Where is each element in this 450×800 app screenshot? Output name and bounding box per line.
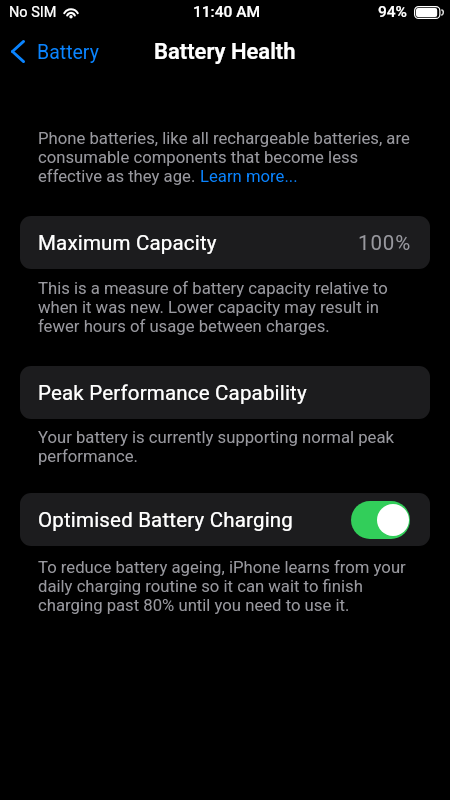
staticText: Battery [37, 41, 99, 64]
staticText: This is a measure of battery capacity re… [38, 279, 412, 336]
button[interactable]: Optimised Battery Charging switch [351, 501, 410, 539]
button[interactable]: Learn more... [200, 167, 298, 187]
button[interactable]: Optimised Battery Charging [20, 493, 430, 546]
staticText: 11:40 AM [193, 3, 261, 21]
staticText: Peak Performance Capability [38, 381, 307, 405]
staticText: To reduce battery ageing, iPhone learns … [38, 558, 412, 615]
staticText: Phone batteries, like all rechargeable b… [38, 129, 410, 167]
staticText: Optimised Battery Charging [38, 508, 294, 532]
button[interactable]: Peak Performance Capability [20, 366, 430, 419]
staticText: Maximum Capacity [38, 231, 217, 255]
staticText: No SIM [9, 4, 57, 21]
staticText: Your battery is currently supporting nor… [38, 428, 412, 466]
button[interactable]: Maximum Capacity [20, 216, 430, 269]
button[interactable]: Back to Battery [0, 30, 109, 69]
staticText: Battery Health [154, 39, 296, 65]
staticText: 94% [378, 3, 408, 21]
staticText: effective as they age. [38, 167, 200, 187]
staticText: 100% [358, 231, 412, 255]
